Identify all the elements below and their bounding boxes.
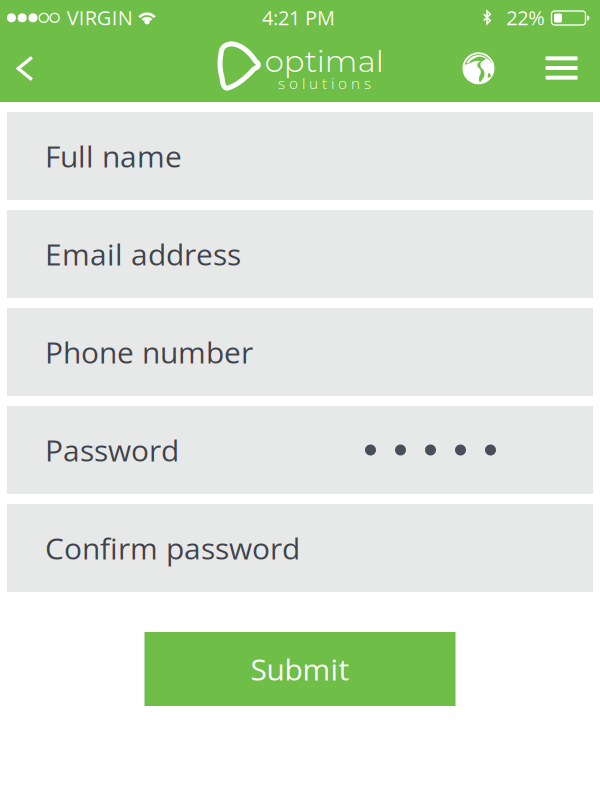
staticText: 4:21 PM <box>262 4 335 31</box>
staticText: Email address <box>45 234 241 274</box>
staticText: Password <box>45 430 179 470</box>
button[interactable]: Language <box>450 39 506 97</box>
button[interactable]: Menu <box>534 39 590 97</box>
staticText: 22% <box>506 4 545 31</box>
staticText: Full name <box>45 136 182 176</box>
button[interactable]: Back <box>0 40 53 98</box>
staticText: VIRGIN <box>67 4 133 31</box>
staticText: Submit <box>250 649 349 689</box>
staticText: Confirm password <box>45 528 300 568</box>
staticText: Phone number <box>45 332 253 372</box>
button[interactable]: Password <box>7 406 593 494</box>
button[interactable]: Confirm password <box>7 504 593 592</box>
button[interactable]: Submit <box>144 632 455 706</box>
staticText: optimal <box>265 42 384 80</box>
staticText: s o l u t i o n s <box>278 73 371 93</box>
button[interactable]: Email address <box>7 210 593 298</box>
button[interactable]: Phone number <box>7 308 593 396</box>
button[interactable]: Full name <box>7 112 593 200</box>
